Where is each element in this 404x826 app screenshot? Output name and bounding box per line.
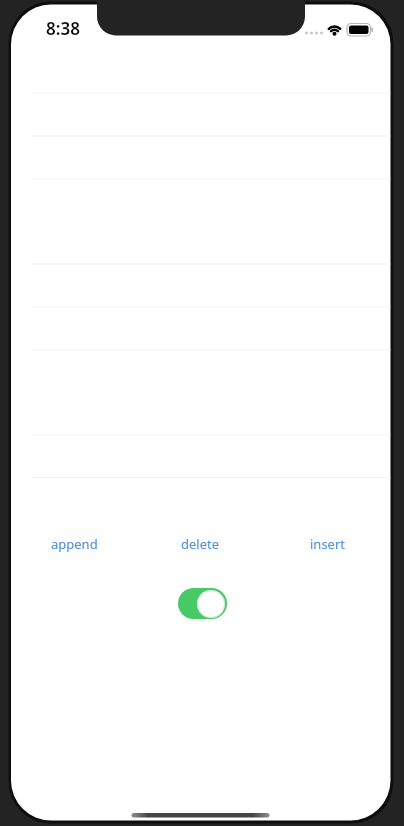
button[interactable]: insert (306, 533, 350, 555)
staticText: 8:38 (46, 17, 80, 40)
button[interactable] (178, 588, 227, 619)
button[interactable]: delete (177, 533, 224, 555)
button[interactable]: append (47, 533, 102, 555)
staticText: append (51, 535, 98, 553)
staticText: insert (310, 535, 346, 553)
staticText: delete (181, 535, 220, 553)
